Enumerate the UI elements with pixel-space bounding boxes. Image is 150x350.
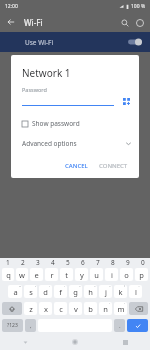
- staticText: b: [88, 304, 93, 314]
- staticText: p: [139, 270, 144, 280]
- staticText: k: [118, 287, 123, 297]
- staticText: q: [6, 270, 11, 280]
- button[interactable]: Enter: [127, 319, 148, 332]
- button[interactable]: o: [120, 268, 133, 281]
- button[interactable]: q: [2, 268, 14, 281]
- button[interactable]: Recent apps: [100, 334, 150, 350]
- staticText: CONNECT: [99, 162, 128, 170]
- button[interactable]: CANCEL: [61, 159, 92, 173]
- button[interactable]: g: [69, 285, 82, 298]
- button[interactable]: x: [39, 302, 52, 315]
- staticText: r: [50, 270, 54, 280]
- button[interactable]: ,: [25, 319, 36, 332]
- staticText: n: [103, 304, 108, 314]
- button[interactable]: Search: [117, 15, 132, 30]
- button[interactable]: y: [75, 268, 88, 281]
- staticText: w: [19, 270, 25, 280]
- staticText: h: [88, 287, 93, 297]
- button[interactable]: i: [105, 268, 118, 281]
- button[interactable]: Scan QR code: [120, 95, 132, 107]
- staticText: z: [29, 304, 33, 314]
- staticText: i: [111, 270, 113, 280]
- button[interactable]: 9: [120, 258, 135, 266]
- staticText: 1: [6, 258, 10, 266]
- staticText: Show password: [32, 119, 80, 128]
- button[interactable]: 7: [90, 258, 105, 266]
- button[interactable]: Use Wi-Fi: [0, 32, 150, 52]
- staticText: 2: [21, 258, 25, 266]
- button[interactable]: 2: [15, 258, 30, 266]
- button[interactable]: c: [54, 302, 67, 315]
- staticText: ": [19, 285, 21, 290]
- button[interactable]: 6: [75, 258, 90, 266]
- button[interactable]: 4: [45, 258, 60, 266]
- staticText: ˚: [124, 285, 126, 290]
- button[interactable]: Backspace: [129, 302, 148, 315]
- button[interactable]: Home: [50, 334, 100, 350]
- button[interactable]: 1: [0, 258, 15, 266]
- staticText: ´: [124, 302, 126, 307]
- staticText: Password: [22, 86, 47, 93]
- staticText: 5: [66, 258, 70, 266]
- button[interactable]: Shift: [2, 302, 22, 315]
- button[interactable]: 3: [30, 258, 45, 266]
- staticText: ?123: [7, 322, 18, 329]
- button[interactable]: m: [114, 302, 127, 315]
- staticText: v: [74, 304, 78, 314]
- staticText: .: [119, 322, 121, 330]
- button[interactable]: e: [30, 268, 43, 281]
- button[interactable]: t: [60, 268, 73, 281]
- staticText: ˜: [109, 285, 111, 290]
- button[interactable]: Back: [4, 15, 18, 29]
- button[interactable]: f: [54, 285, 67, 298]
- staticText: 6: [81, 258, 85, 266]
- button[interactable]: u: [90, 268, 103, 281]
- button[interactable]: s: [24, 285, 37, 298]
- staticText: a: [13, 287, 18, 297]
- button[interactable]: 8: [105, 258, 120, 266]
- staticText: ˘: [94, 285, 96, 290]
- staticText: s: [29, 287, 33, 297]
- button[interactable]: Advanced options: [22, 139, 132, 148]
- button[interactable]: z: [24, 302, 37, 315]
- button[interactable]: a: [8, 285, 22, 298]
- staticText: g: [73, 287, 78, 297]
- button[interactable]: b: [84, 302, 97, 315]
- button[interactable]: r: [45, 268, 58, 281]
- staticText: ¨: [138, 285, 141, 290]
- button[interactable]: d: [39, 285, 52, 298]
- button[interactable]: 5: [60, 258, 75, 266]
- button[interactable]: l: [129, 285, 142, 298]
- staticText: t: [65, 270, 68, 280]
- staticText: 3: [36, 258, 40, 266]
- button[interactable]: j: [99, 285, 112, 298]
- button[interactable]: Show password: [22, 119, 80, 128]
- button[interactable]: v: [69, 302, 82, 315]
- button[interactable]: .: [114, 319, 125, 332]
- button[interactable]: n: [99, 302, 112, 315]
- staticText: e: [34, 270, 39, 280]
- staticText: y: [80, 270, 84, 280]
- button[interactable]: CONNECT: [95, 159, 132, 173]
- staticText: d: [43, 287, 48, 297]
- button[interactable]: p: [135, 268, 148, 281]
- staticText: Use Wi-Fi: [25, 38, 54, 47]
- button[interactable]: w: [16, 268, 28, 281]
- button[interactable]: k: [114, 285, 127, 298]
- staticText: 100 %: [131, 3, 146, 10]
- staticText: ´: [49, 285, 51, 290]
- button[interactable]: Help: [132, 15, 147, 30]
- staticText: ': [35, 285, 36, 290]
- staticText: 4: [51, 258, 55, 266]
- button[interactable]: ?123: [2, 319, 23, 332]
- staticText: l: [135, 287, 137, 297]
- staticText: 12:00: [5, 3, 18, 10]
- staticText: ,: [30, 322, 32, 330]
- staticText: o: [124, 270, 129, 280]
- staticText: ˆ: [79, 285, 81, 290]
- button[interactable]: h: [84, 285, 97, 298]
- button[interactable]: 0: [135, 258, 150, 266]
- staticText: 9: [126, 258, 130, 266]
